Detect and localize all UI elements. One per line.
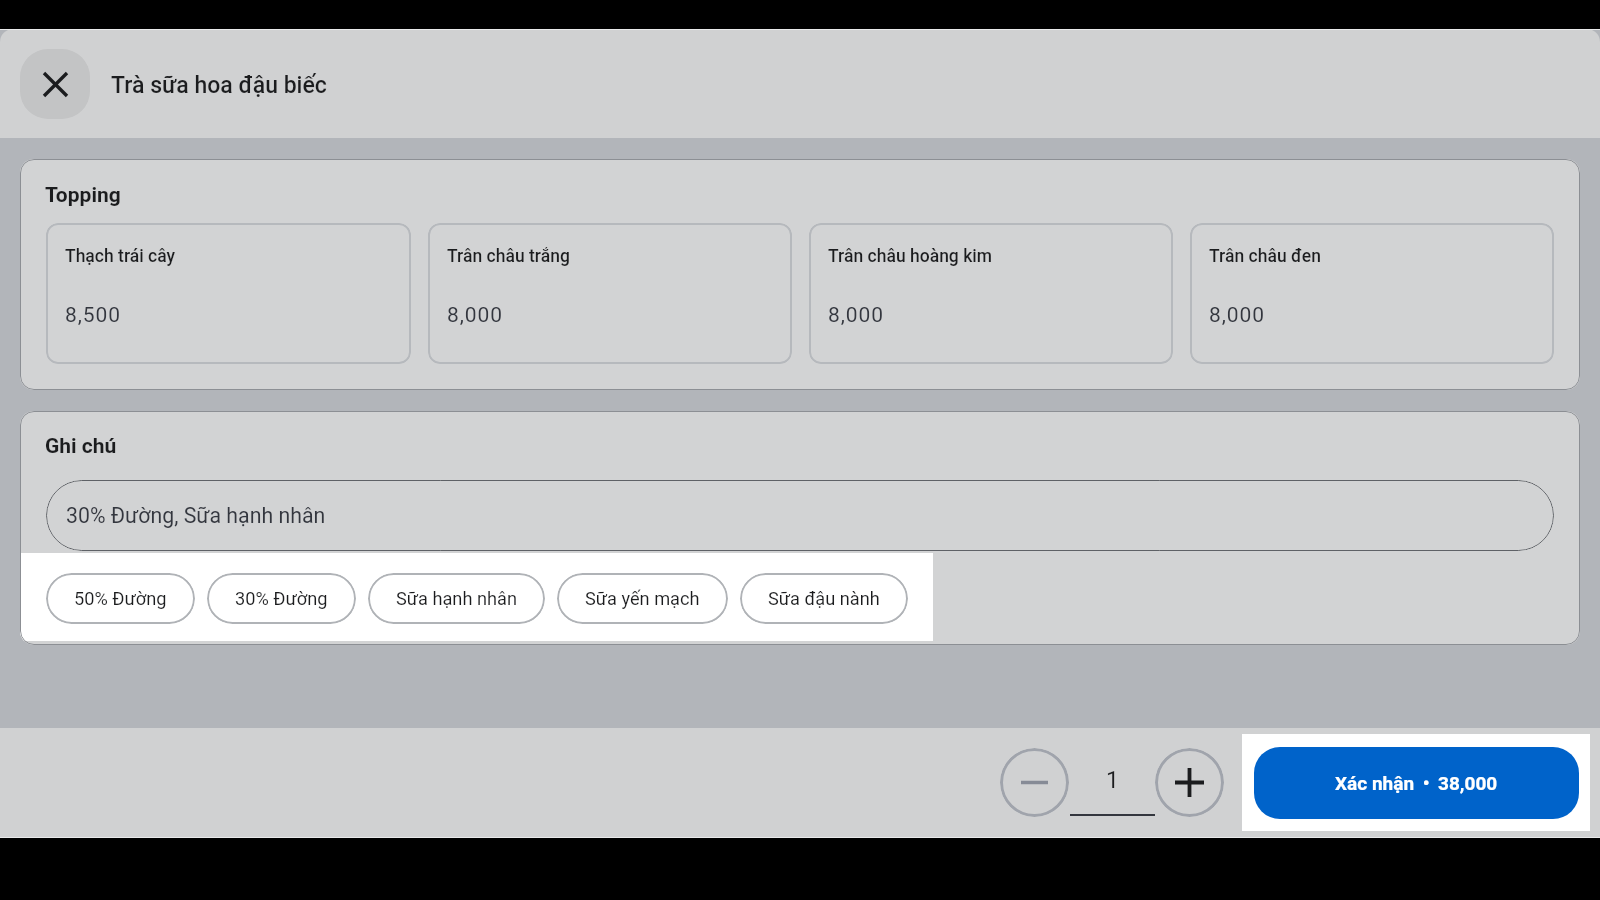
staticText: Ghi chú [45, 432, 117, 458]
button[interactable]: Decrease quantity [1000, 748, 1069, 817]
staticText: 30% Đường [235, 587, 328, 610]
button[interactable]: Sữa yến mạch [557, 573, 728, 624]
staticText: Sữa yến mạch [585, 587, 700, 610]
staticText: 8,500 [65, 301, 121, 327]
button[interactable]: Trân châu hoàng kim [809, 223, 1173, 364]
button[interactable]: Xác nhận • 38,000 [1254, 747, 1579, 819]
button[interactable]: 50% Đường [46, 573, 195, 624]
button[interactable]: Close [20, 49, 90, 119]
button[interactable]: Thạch trái cây [46, 223, 411, 364]
staticText: 8,000 [1209, 301, 1265, 327]
button[interactable]: 30% Đường [207, 573, 356, 624]
staticText: Thạch trái cây [65, 245, 176, 267]
staticText: Sữa hạnh nhân [396, 587, 517, 610]
staticText: Trà sữa hoa đậu biếc [111, 70, 327, 99]
button[interactable]: Increase quantity [1155, 748, 1224, 817]
staticText: Trân châu đen [1209, 245, 1321, 267]
staticText: Sữa đậu nành [768, 587, 880, 610]
staticText: 30% Đường, Sữa hạnh nhân [66, 502, 326, 529]
staticText: Xác nhận • 38,000 [1335, 771, 1498, 795]
staticText: 1 [1106, 765, 1119, 794]
staticText: 50% Đường [74, 587, 167, 610]
button[interactable]: Sữa đậu nành [740, 573, 908, 624]
button[interactable]: Trân châu trắng [428, 223, 792, 364]
staticText: Topping [45, 181, 121, 207]
staticText: 8,000 [447, 301, 503, 327]
button[interactable]: Sữa hạnh nhân [368, 573, 545, 624]
button[interactable]: 30% Đường, Sữa hạnh nhân [46, 480, 1554, 551]
staticText: 8,000 [828, 301, 884, 327]
button[interactable]: Trân châu đen [1190, 223, 1554, 364]
staticText: Trân châu hoàng kim [828, 245, 992, 267]
staticText: Trân châu trắng [447, 245, 570, 267]
